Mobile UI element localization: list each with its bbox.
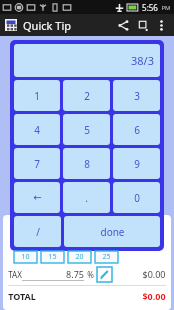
button[interactable]: 25 [95,251,118,263]
button[interactable]: 5 [63,114,110,145]
button[interactable]: 15 [41,251,64,263]
staticText: 20 [75,252,84,262]
staticText: 6 [134,123,140,137]
button[interactable]: 20 [68,251,91,263]
button[interactable]: Edit tax [97,267,112,282]
staticText: $0.00 [142,290,166,302]
staticText: / [36,225,40,239]
button[interactable]: 9 [113,148,160,179]
staticText: % [87,269,94,280]
staticText: 1 [34,89,40,103]
button[interactable]: 10 [14,251,37,263]
button[interactable]: Add [133,15,153,35]
button[interactable]: 8.75 [22,263,84,285]
staticText: 8 [84,157,90,171]
button[interactable]: . [63,182,110,213]
staticText: PM [161,4,171,12]
staticText: 2 [84,89,90,103]
staticText: 4 [34,123,40,137]
staticText: Quick Tip [23,18,71,33]
staticText: TOTAL [8,290,36,302]
staticText: 7 [34,157,40,171]
button[interactable]: 7 [14,148,60,179]
button[interactable]: More options [153,17,169,33]
button[interactable]: done [64,216,160,247]
staticText: 5:56 [142,2,158,13]
button[interactable]: 2 [63,80,110,111]
button[interactable]: 6 [113,114,160,145]
staticText: 5 [84,123,90,137]
staticText: $0.00 [142,268,166,280]
staticText: TAX [8,269,22,280]
button[interactable]: 3 [113,80,160,111]
staticText: 10 [21,252,30,262]
staticText: ← [33,192,42,204]
button[interactable]: 8 [63,148,110,179]
button[interactable]: ← [14,182,60,213]
staticText: 25 [102,252,111,262]
staticText: 15 [48,252,57,262]
button[interactable]: 1 [14,80,60,111]
staticText: 9 [134,157,140,171]
staticText: 38/3 [131,53,154,68]
staticText: . [85,191,88,205]
button[interactable]: 4 [14,114,60,145]
staticText: 0 [134,191,140,205]
button[interactable]: / [14,216,61,247]
staticText: done [100,225,125,239]
button[interactable]: 0 [113,182,160,213]
staticText: 3 [134,89,140,103]
button[interactable]: Share [113,15,133,35]
staticText: 8.75 [66,268,84,280]
